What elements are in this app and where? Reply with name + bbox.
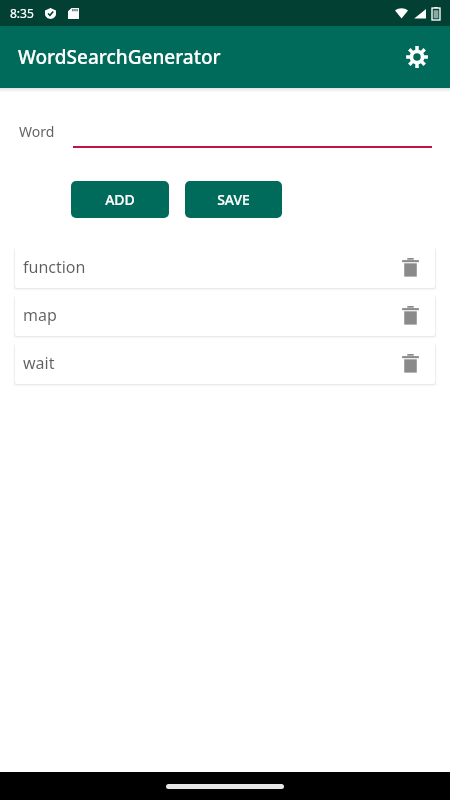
- button[interactable]: ADD: [71, 181, 169, 218]
- staticText: 8:35: [10, 5, 34, 21]
- staticText: WordSearchGenerator: [18, 44, 221, 70]
- staticText: wait: [23, 352, 393, 374]
- staticText: SAVE: [217, 190, 250, 209]
- button[interactable]: function: [15, 246, 435, 288]
- staticText: ADD: [105, 190, 135, 209]
- button[interactable]: SAVE: [185, 181, 282, 218]
- button[interactable]: wait: [15, 342, 435, 384]
- button[interactable]: Delete map: [393, 298, 427, 332]
- button[interactable]: map: [15, 294, 435, 336]
- button[interactable]: [73, 114, 432, 148]
- staticText: function: [23, 256, 393, 278]
- button[interactable]: Delete function: [393, 250, 427, 284]
- staticText: map: [23, 304, 393, 326]
- button[interactable]: Delete wait: [393, 346, 427, 380]
- staticText: Word: [19, 122, 55, 141]
- button[interactable]: Settings: [394, 34, 440, 80]
